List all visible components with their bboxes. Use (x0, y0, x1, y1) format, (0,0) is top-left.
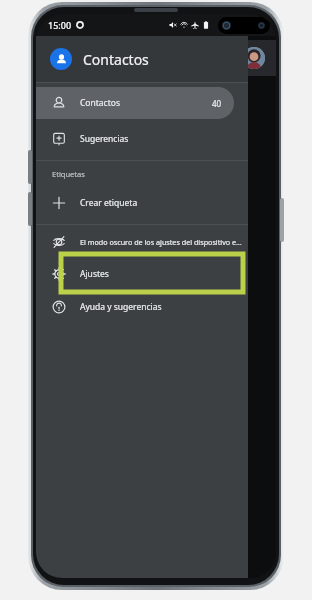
button[interactable]: Contactos (36, 36, 248, 82)
staticText: El modo oscuro de los ajustes del dispos… (80, 237, 242, 247)
staticText: Contactos (83, 50, 149, 69)
button[interactable]: El modo oscuro de los ajustes del dispos… (36, 227, 248, 257)
staticText: Ayuda y sugerencias (80, 301, 162, 313)
button[interactable]: Ajustes (36, 257, 248, 291)
staticText: Ajustes (80, 268, 109, 280)
button[interactable]: Contactos (36, 87, 234, 119)
staticText: Etiquetas (52, 169, 85, 179)
button[interactable]: Sugerencias (36, 123, 248, 155)
staticText: Sugerencias (80, 133, 129, 145)
staticText: 15:00 (48, 19, 72, 31)
button[interactable]: Crear etiqueta (36, 187, 248, 219)
button[interactable]: Cuenta (232, 40, 276, 76)
staticText: Contactos (80, 97, 120, 109)
staticText: Crear etiqueta (80, 197, 138, 209)
button[interactable]: Ayuda y sugerencias (36, 291, 248, 323)
staticText: 40 (212, 98, 222, 109)
